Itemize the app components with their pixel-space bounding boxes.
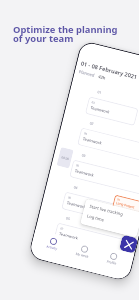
staticText: 03	[81, 152, 86, 158]
button[interactable]: My week	[72, 242, 95, 261]
button[interactable]: Close	[119, 234, 138, 254]
button[interactable]: Profile	[103, 250, 122, 267]
staticText: 04	[117, 197, 121, 202]
staticText: My week	[75, 252, 90, 259]
staticText: 08	[52, 258, 56, 263]
staticText: Activity	[46, 244, 58, 251]
staticText: Start live tracking	[89, 204, 124, 218]
button[interactable]: Log time	[86, 213, 134, 231]
staticText: Teamwork	[82, 136, 103, 146]
staticText: Teamwork	[58, 231, 79, 241]
button[interactable]: 03	[85, 96, 139, 126]
staticText: Teamwork	[66, 200, 87, 210]
button[interactable]: 07	[53, 222, 133, 259]
staticText: 04	[73, 184, 78, 190]
staticText: Optimize the planning of your team	[13, 23, 118, 45]
button[interactable]: 06	[61, 191, 139, 228]
staticText: Planned	[78, 69, 96, 79]
button[interactable]: Activity	[43, 235, 63, 253]
button[interactable]: 04	[112, 194, 139, 216]
staticText: 01	[97, 89, 102, 95]
button[interactable]: 04	[77, 127, 139, 164]
staticText: 06	[68, 195, 72, 200]
staticText: 05	[76, 163, 80, 168]
staticText: Log time	[86, 213, 105, 224]
staticText: Teamwork	[74, 168, 95, 178]
button[interactable]: 05	[69, 159, 139, 196]
button[interactable]: 08	[48, 254, 125, 280]
button[interactable]: Start live tracking	[89, 204, 137, 221]
staticText: 42h	[97, 74, 107, 82]
staticText: 07	[60, 226, 64, 231]
staticText: 08:00	[61, 155, 70, 161]
staticText: Teamwork	[90, 105, 110, 115]
staticText: 04	[84, 131, 87, 136]
staticText: 05	[65, 215, 71, 221]
staticText: 01 - 08 February 2021	[80, 59, 138, 81]
staticText: Profile	[106, 259, 117, 266]
staticText: Long Project	[116, 201, 135, 209]
staticText: 03	[91, 100, 95, 105]
staticText: 02	[89, 120, 94, 126]
